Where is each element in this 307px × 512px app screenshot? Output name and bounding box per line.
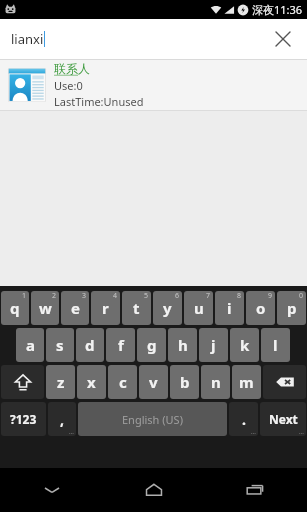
staticText: . bbox=[242, 410, 246, 429]
staticText: 联系人 bbox=[54, 61, 90, 76]
staticText: d bbox=[85, 335, 95, 355]
staticText: k bbox=[240, 335, 250, 355]
button[interactable]: t bbox=[122, 291, 151, 325]
button[interactable]: Backspace bbox=[263, 365, 306, 399]
staticText: English (US) bbox=[122, 412, 183, 427]
staticText: s bbox=[56, 335, 64, 355]
staticText: n bbox=[211, 372, 221, 392]
staticText: Next bbox=[269, 411, 298, 427]
staticText: ... bbox=[251, 428, 256, 436]
button[interactable]: a bbox=[16, 328, 44, 362]
staticText: r bbox=[102, 298, 109, 318]
staticText: 0 bbox=[299, 291, 304, 301]
button[interactable]: i bbox=[215, 291, 244, 325]
button[interactable]: w bbox=[31, 291, 59, 325]
staticText: 5 bbox=[144, 291, 149, 301]
button[interactable]: z bbox=[46, 365, 75, 399]
button[interactable]: l bbox=[261, 328, 290, 362]
staticText: ... bbox=[299, 428, 304, 436]
button[interactable]: Clear search bbox=[267, 23, 299, 55]
button[interactable]: e bbox=[61, 291, 89, 325]
staticText: m bbox=[239, 372, 254, 392]
button[interactable]: f bbox=[106, 328, 135, 362]
staticText: 3 bbox=[82, 291, 87, 301]
button[interactable]: c bbox=[108, 365, 137, 399]
staticText: f bbox=[118, 335, 124, 355]
staticText: i bbox=[227, 298, 232, 318]
button[interactable]: b bbox=[170, 365, 199, 399]
staticText: j bbox=[211, 335, 216, 355]
button[interactable]: p bbox=[277, 291, 306, 325]
button[interactable]: n bbox=[201, 365, 230, 399]
staticText: 9 bbox=[268, 291, 273, 301]
staticText: g bbox=[147, 335, 157, 355]
staticText: p bbox=[287, 298, 297, 318]
button[interactable]: . bbox=[229, 402, 258, 436]
button[interactable]: y bbox=[153, 291, 182, 325]
button[interactable]: ?123 bbox=[1, 402, 46, 436]
staticText: , bbox=[60, 410, 64, 429]
button[interactable]: 联系人 bbox=[0, 60, 307, 110]
staticText: Use:0 bbox=[54, 78, 83, 93]
staticText: LastTime:Unused bbox=[54, 94, 144, 109]
staticText: 8 bbox=[237, 291, 242, 301]
button[interactable]: v bbox=[139, 365, 168, 399]
staticText: q bbox=[10, 298, 20, 318]
staticText: 4 bbox=[113, 291, 118, 301]
button[interactable]: o bbox=[246, 291, 275, 325]
staticText: ?123 bbox=[10, 411, 37, 427]
button[interactable]: g bbox=[137, 328, 166, 362]
staticText: h bbox=[178, 335, 188, 355]
button[interactable]: r bbox=[91, 291, 120, 325]
staticText: 2 bbox=[52, 291, 57, 301]
staticText: u bbox=[194, 298, 204, 318]
staticText: ... bbox=[69, 428, 74, 436]
button[interactable]: Home bbox=[103, 468, 205, 512]
staticText: a bbox=[26, 335, 35, 355]
button[interactable]: Next bbox=[260, 402, 306, 436]
staticText: 1 bbox=[22, 291, 27, 301]
staticText: y bbox=[163, 298, 172, 318]
button[interactable]: m bbox=[232, 365, 261, 399]
staticText: l bbox=[273, 335, 278, 355]
other: Backspace bbox=[263, 365, 306, 399]
button[interactable]: u bbox=[184, 291, 213, 325]
staticText: 7 bbox=[206, 291, 211, 301]
staticText: e bbox=[71, 298, 80, 318]
staticText: 深夜11:36 bbox=[252, 2, 303, 17]
staticText: t bbox=[133, 298, 140, 318]
staticText: v bbox=[149, 372, 158, 392]
button[interactable]: q bbox=[1, 291, 29, 325]
button[interactable]: s bbox=[46, 328, 74, 362]
button[interactable]: Recent apps bbox=[205, 468, 307, 512]
button[interactable]: k bbox=[230, 328, 259, 362]
other: Shift bbox=[1, 365, 44, 399]
button[interactable]: Hide keyboard bbox=[0, 468, 103, 512]
button[interactable]: j bbox=[199, 328, 228, 362]
staticText: z bbox=[57, 372, 65, 392]
button[interactable]: x bbox=[77, 365, 106, 399]
staticText: lianxi bbox=[11, 30, 44, 48]
button[interactable]: Shift bbox=[1, 365, 44, 399]
button[interactable]: d bbox=[76, 328, 104, 362]
staticText: o bbox=[256, 298, 266, 318]
staticText: c bbox=[119, 372, 127, 392]
staticText: 6 bbox=[175, 291, 180, 301]
button[interactable]: h bbox=[168, 328, 197, 362]
staticText: b bbox=[180, 372, 190, 392]
button[interactable]: English (US) bbox=[78, 402, 227, 436]
staticText: w bbox=[39, 298, 52, 318]
button[interactable]: , bbox=[48, 402, 76, 436]
staticText: x bbox=[87, 372, 96, 392]
